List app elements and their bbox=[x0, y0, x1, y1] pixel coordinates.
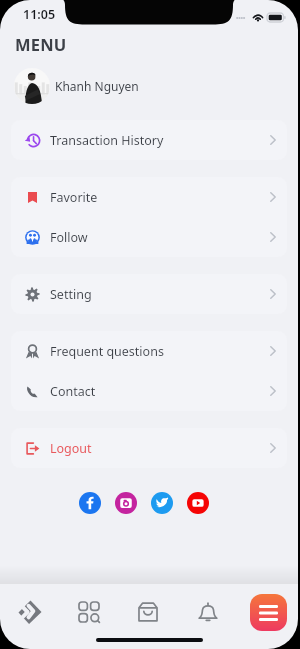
staticText: Frequent questions bbox=[50, 343, 164, 360]
button[interactable]: YouTube bbox=[187, 492, 209, 514]
staticText: 11:05 bbox=[23, 6, 56, 23]
staticText: Transaction History bbox=[50, 132, 164, 149]
staticText: Khanh Nguyen bbox=[55, 78, 139, 94]
button[interactable]: Setting bbox=[11, 274, 287, 314]
button[interactable]: Contact bbox=[11, 371, 287, 411]
staticText: Contact bbox=[50, 383, 96, 400]
button[interactable]: Shopping bag bbox=[118, 584, 178, 640]
button[interactable]: Frequent questions bbox=[11, 331, 287, 371]
button[interactable]: Khanh Nguyen bbox=[0, 68, 298, 104]
staticText: Logout bbox=[50, 440, 92, 457]
button[interactable]: Logout bbox=[11, 428, 287, 468]
staticText: Setting bbox=[50, 286, 92, 303]
button[interactable]: Transaction History bbox=[11, 120, 287, 160]
button[interactable]: Favorite bbox=[11, 177, 287, 217]
staticText: MENU bbox=[15, 33, 67, 55]
staticText: Favorite bbox=[50, 189, 98, 206]
button[interactable]: Home bbox=[0, 584, 59, 640]
staticText: Follow bbox=[50, 229, 88, 246]
button[interactable]: Notifications bbox=[178, 584, 238, 640]
button[interactable]: Twitter bbox=[151, 492, 173, 514]
button[interactable]: Instagram bbox=[115, 492, 137, 514]
button[interactable]: Follow bbox=[11, 217, 287, 257]
button[interactable]: Menu bbox=[250, 594, 287, 631]
button[interactable]: Categories bbox=[59, 584, 118, 640]
button[interactable]: Facebook bbox=[79, 492, 101, 514]
